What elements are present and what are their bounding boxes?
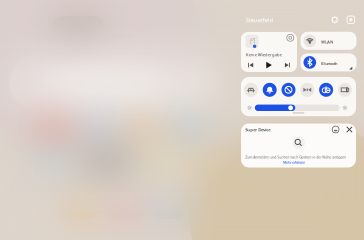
button[interactable]: Next xyxy=(284,62,290,68)
staticText: Super Device xyxy=(245,127,270,132)
button[interactable]: Audio output xyxy=(287,34,294,41)
button[interactable]: Control panel settings xyxy=(331,16,338,23)
staticText: WLAN xyxy=(321,39,333,45)
staticText: Zum Anmelden und Suchen nach Geräten in … xyxy=(245,155,346,159)
button[interactable]: Bluetooth xyxy=(300,53,356,71)
button[interactable]: Do not disturb xyxy=(281,83,295,97)
button[interactable]: Data transfer xyxy=(300,83,314,97)
button[interactable]: Previous xyxy=(248,62,254,68)
button[interactable]: Screen cast xyxy=(338,83,352,97)
button[interactable]: Eye comfort xyxy=(319,83,333,97)
staticText: Bluetooth xyxy=(321,61,337,66)
button[interactable]: Edit controls xyxy=(347,16,354,23)
button[interactable]: Mehr erfahren xyxy=(283,160,305,165)
button[interactable]: Driving mode xyxy=(244,83,258,97)
button[interactable]: Close xyxy=(346,126,353,133)
button[interactable]: Account xyxy=(332,126,339,133)
button[interactable]: Search for nearby devices xyxy=(292,137,305,149)
staticText: Steuerfeld xyxy=(245,16,273,24)
button[interactable]: Sound xyxy=(263,83,277,97)
staticText: Keine Wiedergabe xyxy=(246,52,282,57)
button[interactable]: WLAN xyxy=(300,32,356,50)
button[interactable]: Play xyxy=(266,61,272,69)
staticText: Mehr erfahren xyxy=(283,160,305,165)
